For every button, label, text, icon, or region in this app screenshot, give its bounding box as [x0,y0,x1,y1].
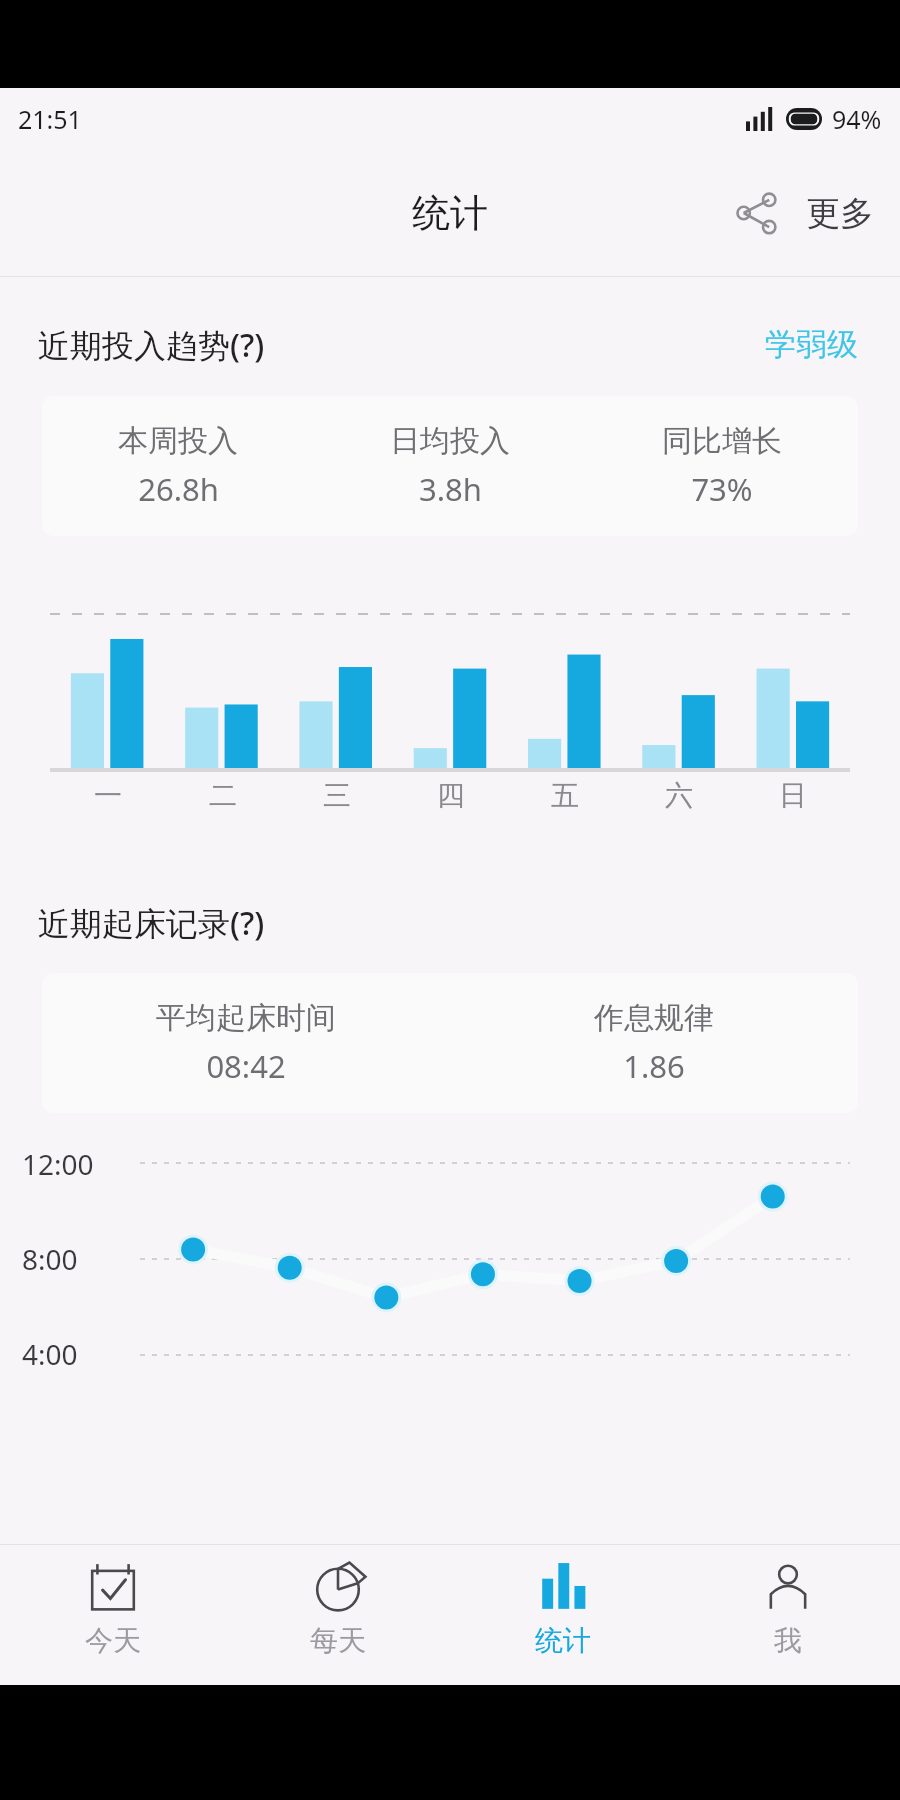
staticText: 五 [551,778,579,813]
staticText: 本周投入 [118,422,238,460]
staticText: 4:00 [22,1335,78,1373]
button[interactable]: Share [720,177,792,249]
staticText: 1.86 [623,1045,685,1087]
staticText: 每天 [310,1623,366,1658]
button[interactable]: 更多 [800,180,880,247]
staticText: 08:42 [206,1045,286,1087]
staticText: 8:00 [22,1240,78,1278]
staticText: 3.8h [419,468,482,510]
staticText: 近期起床记录(?) [38,901,265,945]
staticText: 94% [832,102,882,136]
staticText: 统计 [412,189,488,237]
staticText: 73% [691,468,753,510]
staticText: 近期投入趋势(?) [38,323,265,367]
staticText: 今天 [85,1623,141,1658]
staticText: 我 [774,1623,802,1658]
staticText: 二 [209,778,237,813]
button[interactable]: 平均起床时间 [42,973,858,1113]
staticText: 更多 [806,192,874,235]
staticText: 三 [323,778,351,813]
button[interactable]: 每天 [225,1545,450,1685]
staticText: 同比增长 [662,422,782,460]
staticText: 日均投入 [390,422,510,460]
staticText: 作息规律 [594,999,714,1037]
staticText: 12:00 [22,1145,94,1183]
staticText: 一 [94,778,122,813]
button[interactable]: 统计 [450,1545,675,1685]
button[interactable]: 我 [675,1545,900,1685]
button[interactable]: 本周投入 [42,396,858,536]
staticText: 学弱级 [765,325,858,364]
staticText: 21:51 [18,102,82,136]
staticText: 六 [665,778,693,813]
staticText: 平均起床时间 [156,999,336,1037]
staticText: 统计 [535,1623,591,1658]
button[interactable]: 今天 [0,1545,225,1685]
staticText: 四 [437,778,465,813]
staticText: 日 [779,778,807,813]
staticText: 26.8h [138,468,219,510]
button[interactable]: 学弱级 [761,321,862,368]
